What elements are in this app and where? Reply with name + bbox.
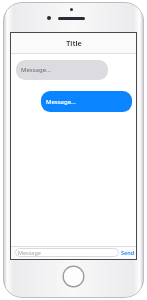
staticText: Message... [46,98,76,106]
button[interactable]: Send [120,246,136,259]
staticText: Message... [21,66,51,74]
staticText: Title [66,39,82,49]
staticText: Send [121,249,135,256]
button[interactable]: Message [15,248,119,257]
button[interactable]: Message... [41,91,132,112]
button[interactable]: Message... [16,60,108,80]
staticText: Message [18,249,41,256]
button[interactable]: Home [62,265,85,288]
